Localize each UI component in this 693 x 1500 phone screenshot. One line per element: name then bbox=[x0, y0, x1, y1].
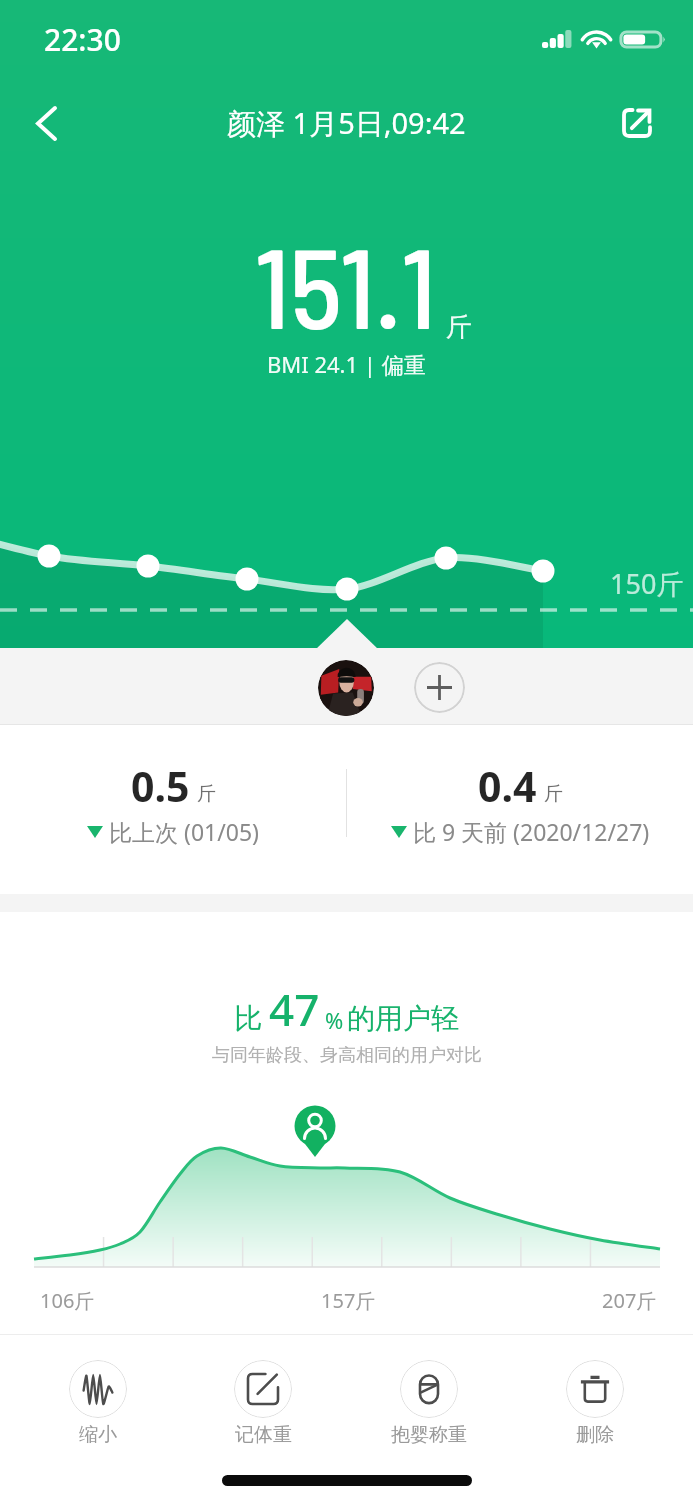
staticText: 0.5 bbox=[131, 758, 190, 814]
staticText: 抱婴称重 bbox=[391, 1423, 467, 1447]
staticText: 缩小 bbox=[79, 1423, 117, 1447]
button[interactable]: 0.5 bbox=[0, 758, 346, 847]
staticText: 斤 bbox=[544, 782, 563, 806]
staticText: 记体重 bbox=[235, 1423, 292, 1447]
staticText: 斤 bbox=[446, 311, 472, 344]
button[interactable]: 记体重 bbox=[180, 1360, 346, 1447]
staticText: 157斤 bbox=[321, 1287, 376, 1314]
staticText: 47 bbox=[269, 979, 320, 1039]
staticText: 150斤 bbox=[610, 565, 684, 602]
button[interactable]: Add record bbox=[414, 662, 465, 713]
staticText: 0.4 bbox=[478, 758, 537, 814]
staticText: 106斤 bbox=[40, 1287, 95, 1314]
staticText: 22:30 bbox=[44, 19, 121, 60]
staticText: 删除 bbox=[576, 1423, 614, 1447]
staticText: 比 bbox=[234, 1001, 262, 1036]
staticText: 比上次 (01/05) bbox=[109, 816, 259, 847]
staticText: 207斤 bbox=[602, 1287, 657, 1314]
staticText: BMI 24.1 | 偏重 bbox=[267, 349, 426, 379]
button[interactable]: Back bbox=[8, 85, 84, 161]
button[interactable]: 缩小 bbox=[15, 1360, 180, 1447]
button[interactable]: 删除 bbox=[512, 1360, 678, 1447]
staticText: 比 9 天前 (2020/12/27) bbox=[413, 816, 650, 847]
staticText: 的用户轻 bbox=[347, 1001, 459, 1036]
button[interactable]: User avatar bbox=[318, 660, 374, 716]
staticText: 151.1 bbox=[255, 217, 437, 351]
staticText: 斤 bbox=[197, 782, 216, 806]
button[interactable]: 抱婴称重 bbox=[346, 1360, 512, 1447]
staticText: 颜泽 1月5日,09:42 bbox=[227, 103, 466, 143]
staticText: 与同年龄段、身高相同的用户对比 bbox=[212, 1044, 482, 1067]
button[interactable]: 0.4 bbox=[347, 758, 693, 847]
button[interactable]: Share bbox=[599, 85, 675, 161]
staticText: % bbox=[325, 1005, 344, 1035]
